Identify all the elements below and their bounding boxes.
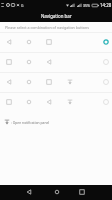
staticText: Navigation bar xyxy=(41,13,72,19)
button[interactable] xyxy=(0,52,112,72)
staticText: 35% xyxy=(83,3,91,8)
staticText: HD xyxy=(1,5,5,8)
button[interactable]: Recents xyxy=(74,184,90,199)
staticText: : Open notification panel xyxy=(11,120,50,124)
staticText: Please select a combination of navigatio… xyxy=(5,25,89,30)
button[interactable]: Back xyxy=(21,184,37,199)
staticText: HD xyxy=(1,2,5,5)
staticText: 14:28 xyxy=(100,2,112,8)
button[interactable] xyxy=(0,72,112,92)
button[interactable] xyxy=(0,32,112,52)
button[interactable] xyxy=(0,92,112,112)
staticText: G xyxy=(21,3,24,8)
button[interactable]: Home xyxy=(49,184,65,199)
